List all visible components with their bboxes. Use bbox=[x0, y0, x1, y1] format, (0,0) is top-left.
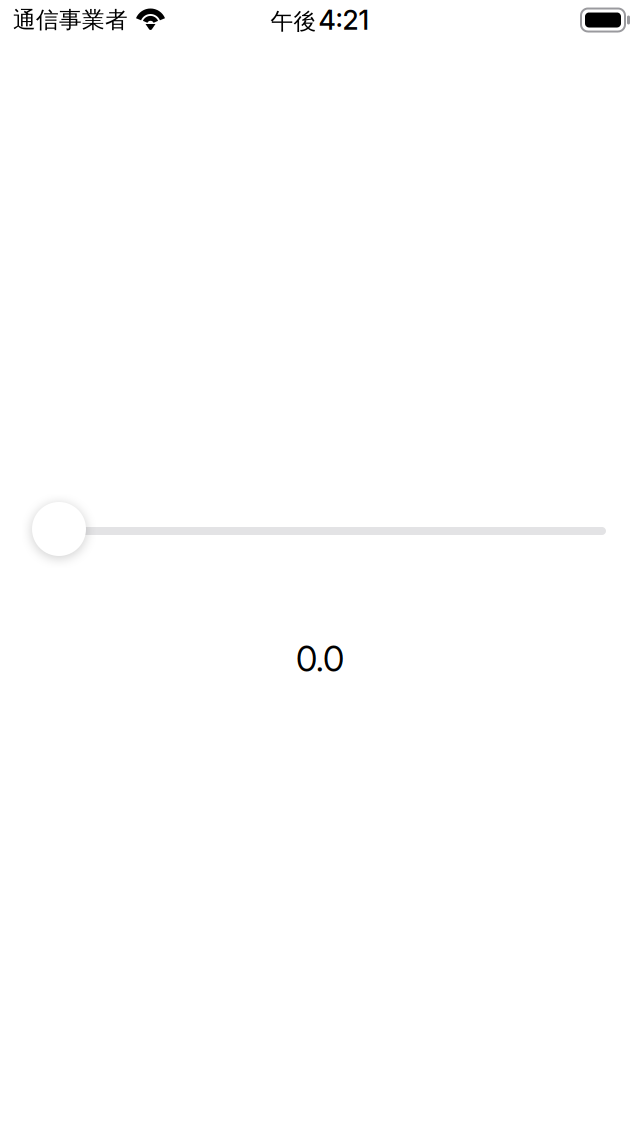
staticText: 午後 4:21 bbox=[270, 4, 369, 36]
button[interactable]: Slider bbox=[0, 501, 640, 561]
staticText: 0.0 bbox=[296, 638, 344, 680]
staticText: 通信事業者 bbox=[13, 6, 128, 34]
